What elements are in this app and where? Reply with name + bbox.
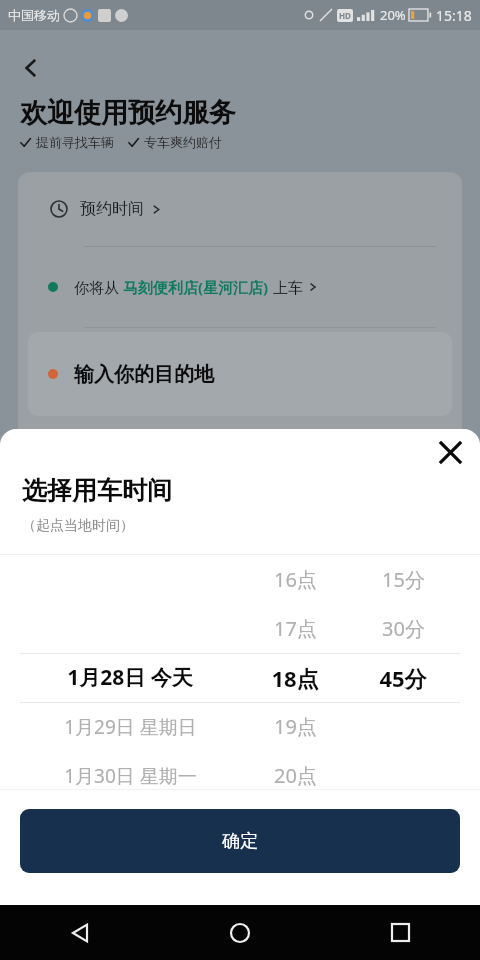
button[interactable]: 17点 <box>205 604 385 653</box>
staticText: 1月29日 星期日 <box>64 714 197 740</box>
staticText: 1月28日 今天 <box>67 663 193 692</box>
button[interactable]: 输入你的目的地 <box>28 332 452 416</box>
staticText: 专车爽约赔付 <box>144 134 222 150</box>
button[interactable]: 1月29日 星期日 <box>40 702 220 751</box>
staticText: 20点 <box>274 762 317 789</box>
staticText: （起点当地时间） <box>22 517 134 535</box>
button[interactable]: 30分 <box>313 604 480 653</box>
button[interactable]: 确定 <box>20 809 460 873</box>
staticText: 1月30日 星期一 <box>64 763 197 789</box>
staticText: 20% <box>380 6 406 24</box>
staticText: 输入你的目的地 <box>74 362 214 387</box>
button[interactable]: 19点 <box>205 702 385 751</box>
button[interactable]: 45分 <box>313 653 480 702</box>
button[interactable]: Recents <box>320 905 480 960</box>
button[interactable]: 1月28日 今天 <box>40 653 220 702</box>
staticText: 欢迎使用预约服务 <box>20 96 236 130</box>
staticText: 15:18 <box>436 6 472 25</box>
button[interactable]: Back <box>0 905 160 960</box>
button[interactable]: Home <box>160 905 320 960</box>
staticText: 18点 <box>271 663 319 693</box>
staticText: 确定 <box>222 830 258 853</box>
staticText: 19点 <box>274 713 317 740</box>
staticText: 马刻便利店(星河汇店) <box>123 277 269 297</box>
button[interactable]: 15分 <box>313 555 480 604</box>
button[interactable]: 1月30日 星期一 <box>40 751 220 800</box>
staticText: 上车 <box>269 277 303 297</box>
staticText: 中国移动 <box>8 7 60 23</box>
button[interactable]: 预约时间 <box>18 172 462 246</box>
button[interactable]: Back <box>8 45 54 91</box>
staticText: 选择用车时间 <box>22 475 172 506</box>
staticText: 45分 <box>379 663 427 693</box>
staticText: 提前寻找车辆 <box>36 134 114 150</box>
staticText: 15分 <box>382 566 425 593</box>
button[interactable]: 20点 <box>205 751 385 800</box>
staticText: 16点 <box>274 566 317 593</box>
button[interactable]: 16点 <box>205 555 385 604</box>
button[interactable]: Close <box>428 430 472 474</box>
button[interactable]: 18点 <box>205 653 385 702</box>
staticText: 30分 <box>382 615 425 642</box>
staticText: HD <box>339 10 351 21</box>
staticText: 17点 <box>274 615 317 642</box>
staticText: 你将从 <box>74 277 123 297</box>
staticText: 预约时间 <box>80 199 144 219</box>
button[interactable]: 你将从 <box>18 247 462 327</box>
